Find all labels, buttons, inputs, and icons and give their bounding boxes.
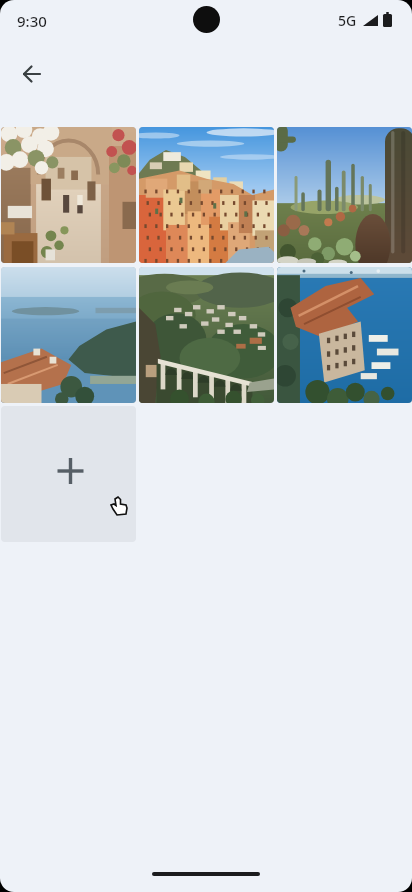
button[interactable] [139,127,274,263]
button[interactable] [1,406,136,542]
staticText: 5G [338,11,357,30]
button[interactable] [277,267,412,403]
button[interactable] [139,267,274,403]
button[interactable] [8,50,56,98]
button[interactable] [1,267,136,403]
button[interactable] [1,127,136,263]
staticText: 9:30 [17,11,47,31]
button[interactable] [277,127,412,263]
